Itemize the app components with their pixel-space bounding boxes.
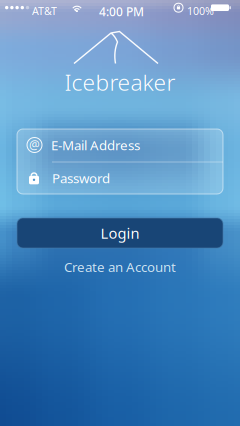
staticText: 100% [187, 4, 214, 18]
button[interactable]: Password [17, 162, 223, 194]
staticText: Icebreaker [64, 67, 175, 97]
staticText: Login [100, 223, 139, 243]
button[interactable]: @ [17, 129, 223, 161]
staticText: AT&T [32, 4, 57, 18]
staticText: Create an Account [64, 258, 176, 276]
button[interactable]: Create an Account [0, 258, 240, 276]
staticText: Password [52, 169, 110, 187]
staticText: 4:00 PM [99, 4, 144, 19]
button[interactable]: Login [17, 218, 223, 248]
staticText: @ [29, 136, 40, 152]
staticText: E-Mail Address [51, 136, 140, 154]
